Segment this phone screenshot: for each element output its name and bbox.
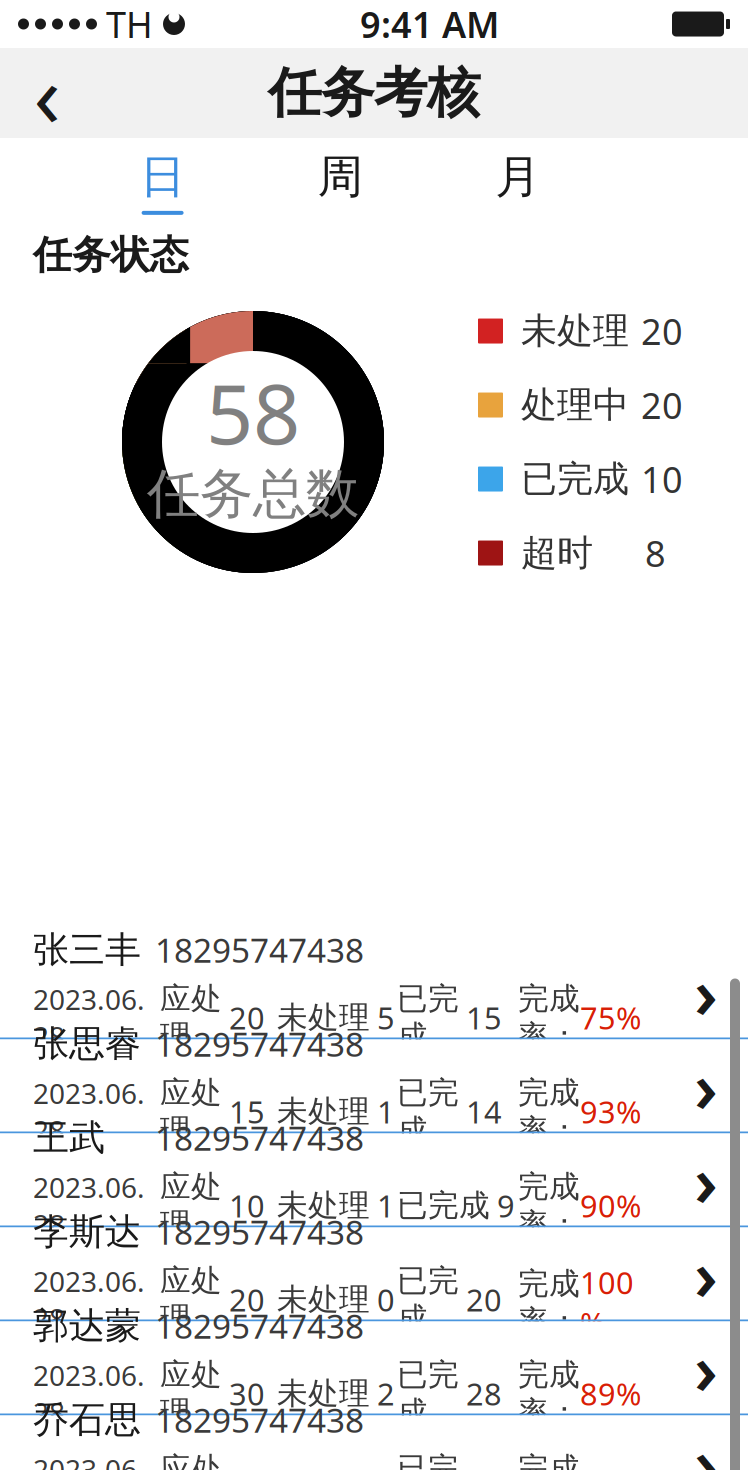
staticText: › bbox=[694, 1227, 718, 1320]
staticText: 周 bbox=[318, 149, 363, 205]
staticText: 未处理 bbox=[277, 1281, 370, 1318]
staticText: 1 bbox=[377, 1091, 395, 1132]
staticText: 18295747438 bbox=[155, 1022, 364, 1066]
staticText: 完成率： bbox=[518, 1356, 580, 1431]
staticText: 日 bbox=[140, 149, 185, 205]
staticText: 15 bbox=[229, 1091, 265, 1132]
staticText: 完成率： bbox=[518, 1074, 580, 1149]
staticText: 完成率： bbox=[518, 980, 580, 1055]
staticText: 10 bbox=[229, 1185, 265, 1226]
staticText: 任务考核 bbox=[268, 60, 480, 126]
staticText: 10 bbox=[641, 455, 683, 503]
staticText: 5 bbox=[377, 997, 395, 1038]
staticText: 14 bbox=[466, 1091, 502, 1132]
staticText: 未处理 bbox=[277, 1093, 370, 1130]
staticText: 2023.06.28 bbox=[33, 1262, 145, 1337]
staticText: 应处理 bbox=[160, 1450, 222, 1470]
staticText: 93% bbox=[580, 1091, 641, 1132]
staticText: 已完成 bbox=[397, 1262, 459, 1337]
staticText: 100% bbox=[580, 1262, 634, 1343]
button[interactable]: 周 bbox=[285, 147, 395, 217]
staticText: 处理中 bbox=[521, 383, 629, 427]
staticText: 郭达蒙 bbox=[33, 1304, 141, 1348]
staticText: 18295747438 bbox=[155, 1398, 364, 1442]
staticText: 20 bbox=[641, 307, 683, 355]
button[interactable]: Back bbox=[10, 50, 84, 136]
staticText: › bbox=[694, 1415, 718, 1470]
staticText: 0 bbox=[377, 1279, 395, 1320]
staticText: 28 bbox=[466, 1373, 502, 1414]
staticText: 20 bbox=[641, 381, 683, 429]
staticText: 已完成 bbox=[397, 1074, 459, 1149]
staticText: 2023.06.28 bbox=[33, 1356, 145, 1431]
staticText: ‹ bbox=[33, 35, 60, 151]
staticText: 18295747438 bbox=[155, 1210, 364, 1254]
staticText: 1 bbox=[377, 1185, 395, 1226]
staticText: › bbox=[694, 1133, 718, 1226]
staticText: 应处理 bbox=[160, 1074, 222, 1149]
staticText: 超时 bbox=[521, 531, 593, 575]
button[interactable]: 李斯达 bbox=[0, 1227, 748, 1321]
staticText: 18295747438 bbox=[155, 1116, 364, 1160]
staticText: 张三丰 bbox=[33, 928, 141, 972]
staticText: 月 bbox=[495, 149, 540, 205]
button[interactable]: 张思睿 bbox=[0, 1039, 748, 1133]
staticText: › bbox=[694, 1321, 718, 1414]
staticText: 18295747438 bbox=[155, 1304, 364, 1348]
staticText: 15 bbox=[466, 997, 502, 1038]
staticText: 90% bbox=[580, 1185, 641, 1226]
staticText: 任务状态 bbox=[33, 231, 189, 279]
staticText: 已完成 bbox=[521, 457, 629, 501]
staticText: 任务统计 bbox=[33, 1025, 189, 1073]
staticText: 张思睿 bbox=[33, 1022, 141, 1066]
staticText: 未处理 bbox=[277, 1187, 370, 1224]
staticText: 应处理 bbox=[160, 980, 222, 1055]
button[interactable]: 日 bbox=[108, 147, 218, 217]
button[interactable]: 郭达蒙 bbox=[0, 1321, 748, 1415]
staticText: › bbox=[694, 945, 718, 1038]
staticText: 已完成 bbox=[397, 1187, 490, 1224]
staticText: 2023.06.28 bbox=[33, 980, 145, 1055]
button[interactable]: 乔石思 bbox=[0, 1415, 748, 1470]
button[interactable]: 张三丰 bbox=[0, 945, 748, 1039]
staticText: 完成率： bbox=[518, 1265, 580, 1340]
staticText: 9:41 AM bbox=[360, 0, 499, 48]
staticText: 任务总数 bbox=[147, 461, 359, 527]
staticText: 已完成 bbox=[397, 1356, 459, 1431]
staticText: 李斯达 bbox=[33, 1210, 141, 1254]
staticText: 王武 bbox=[33, 1116, 105, 1160]
staticText: 应处理 bbox=[160, 1262, 222, 1337]
staticText: 已完成 bbox=[397, 980, 459, 1055]
staticText: 30 bbox=[229, 1373, 265, 1414]
staticText: TH bbox=[106, 0, 153, 48]
staticText: 9 bbox=[497, 1185, 515, 1226]
staticText: 75% bbox=[580, 997, 641, 1038]
staticText: 20 bbox=[229, 997, 265, 1038]
staticText: 未处理 bbox=[277, 999, 370, 1036]
staticText: 已完成 bbox=[397, 1450, 459, 1470]
staticText: 应处理 bbox=[160, 1356, 222, 1431]
staticText: 20 bbox=[229, 1279, 265, 1320]
staticText: 18295747438 bbox=[155, 928, 364, 972]
staticText: 2023.06.28 bbox=[33, 1168, 145, 1243]
staticText: 20 bbox=[466, 1279, 502, 1320]
staticText: 2 bbox=[377, 1373, 395, 1414]
staticText: 89% bbox=[580, 1373, 641, 1414]
staticText: 未处理 bbox=[277, 1375, 370, 1412]
staticText: 应处理 bbox=[160, 1168, 222, 1243]
staticText: 8 bbox=[645, 529, 666, 577]
staticText: 2023.06.28 bbox=[33, 1450, 145, 1470]
staticText: 未处理 bbox=[521, 309, 629, 353]
staticText: 乔石思 bbox=[33, 1398, 141, 1442]
staticText: 2023.06.28 bbox=[33, 1074, 145, 1149]
button[interactable]: 月 bbox=[463, 147, 573, 217]
staticText: 完成率： bbox=[518, 1168, 580, 1243]
button[interactable]: 王武 bbox=[0, 1133, 748, 1227]
staticText: 完成率： bbox=[518, 1450, 580, 1470]
staticText: 58 bbox=[206, 357, 300, 467]
